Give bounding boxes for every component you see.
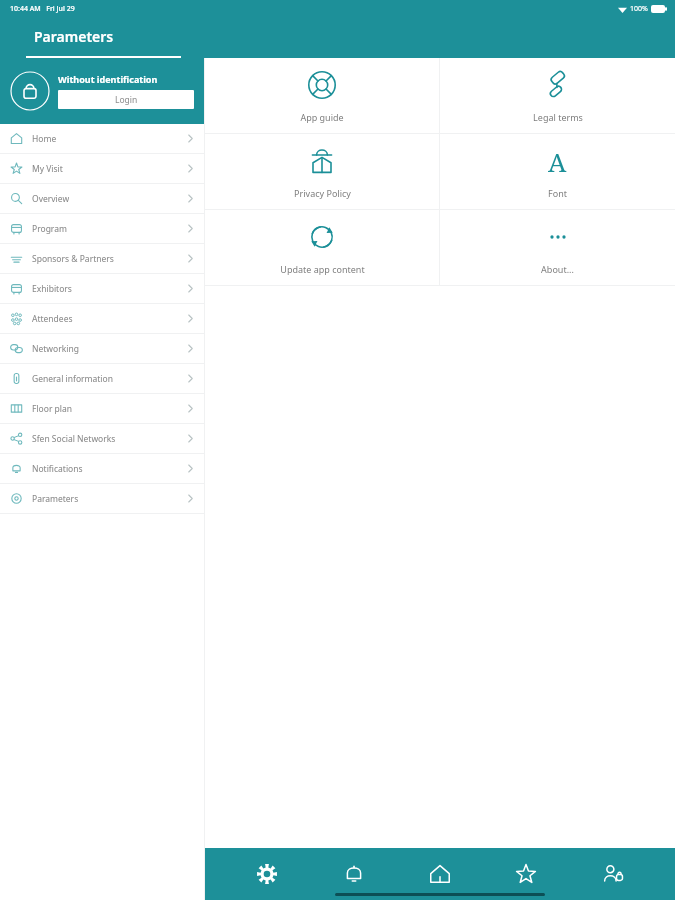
button[interactable]: App guide: [205, 58, 439, 133]
button[interactable]: Login: [58, 90, 194, 109]
button[interactable]: Networking: [0, 334, 204, 363]
button[interactable]: Overview: [0, 184, 204, 213]
button[interactable]: Favorites: [502, 850, 550, 898]
button[interactable]: Notifications: [0, 454, 204, 483]
button[interactable]: Sfen Social Networks: [0, 424, 204, 453]
staticText: Sfen Social Networks: [32, 433, 187, 445]
staticText: Update app content: [280, 263, 365, 275]
staticText: Font: [548, 187, 567, 199]
staticText: Without identification: [58, 73, 158, 85]
staticText: Floor plan: [32, 403, 187, 415]
button[interactable]: Profile: [589, 850, 637, 898]
staticText: Home: [32, 133, 187, 145]
staticText: Attendees: [32, 313, 187, 325]
button[interactable]: Privacy Policy: [205, 134, 439, 209]
button[interactable]: Program: [0, 214, 204, 243]
button[interactable]: Home: [0, 124, 204, 153]
staticText: Exhibitors: [32, 283, 187, 295]
staticText: Networking: [32, 343, 187, 355]
staticText: A: [548, 144, 567, 178]
staticText: Notifications: [32, 463, 187, 475]
staticText: 10:44 AM Fri Jul 29: [10, 4, 75, 14]
button[interactable]: Legal terms: [440, 58, 675, 133]
staticText: About...: [541, 263, 574, 275]
button[interactable]: Settings: [243, 850, 291, 898]
button[interactable]: Exhibitors: [0, 274, 204, 303]
staticText: Privacy Policy: [294, 187, 351, 199]
button[interactable]: Attendees: [0, 304, 204, 333]
staticText: Overview: [32, 193, 187, 205]
button[interactable]: Notifications: [330, 850, 378, 898]
staticText: Sponsors & Partners: [32, 253, 187, 265]
staticText: App guide: [300, 111, 344, 123]
staticText: General information: [32, 373, 187, 385]
staticText: My Visit: [32, 163, 187, 175]
button[interactable]: Floor plan: [0, 394, 204, 423]
button[interactable]: General information: [0, 364, 204, 393]
staticText: Parameters: [34, 27, 114, 46]
staticText: Parameters: [32, 493, 187, 505]
button[interactable]: My Visit: [0, 154, 204, 183]
button[interactable]: Sponsors & Partners: [0, 244, 204, 273]
button[interactable]: Update app content: [205, 210, 439, 285]
staticText: Legal terms: [533, 111, 583, 123]
staticText: 100%: [630, 4, 648, 14]
button[interactable]: Parameters: [0, 484, 204, 513]
button[interactable]: A: [440, 134, 675, 209]
staticText: Program: [32, 223, 187, 235]
staticText: Login: [115, 94, 138, 106]
button[interactable]: About...: [440, 210, 675, 285]
button[interactable]: Home: [416, 850, 464, 898]
